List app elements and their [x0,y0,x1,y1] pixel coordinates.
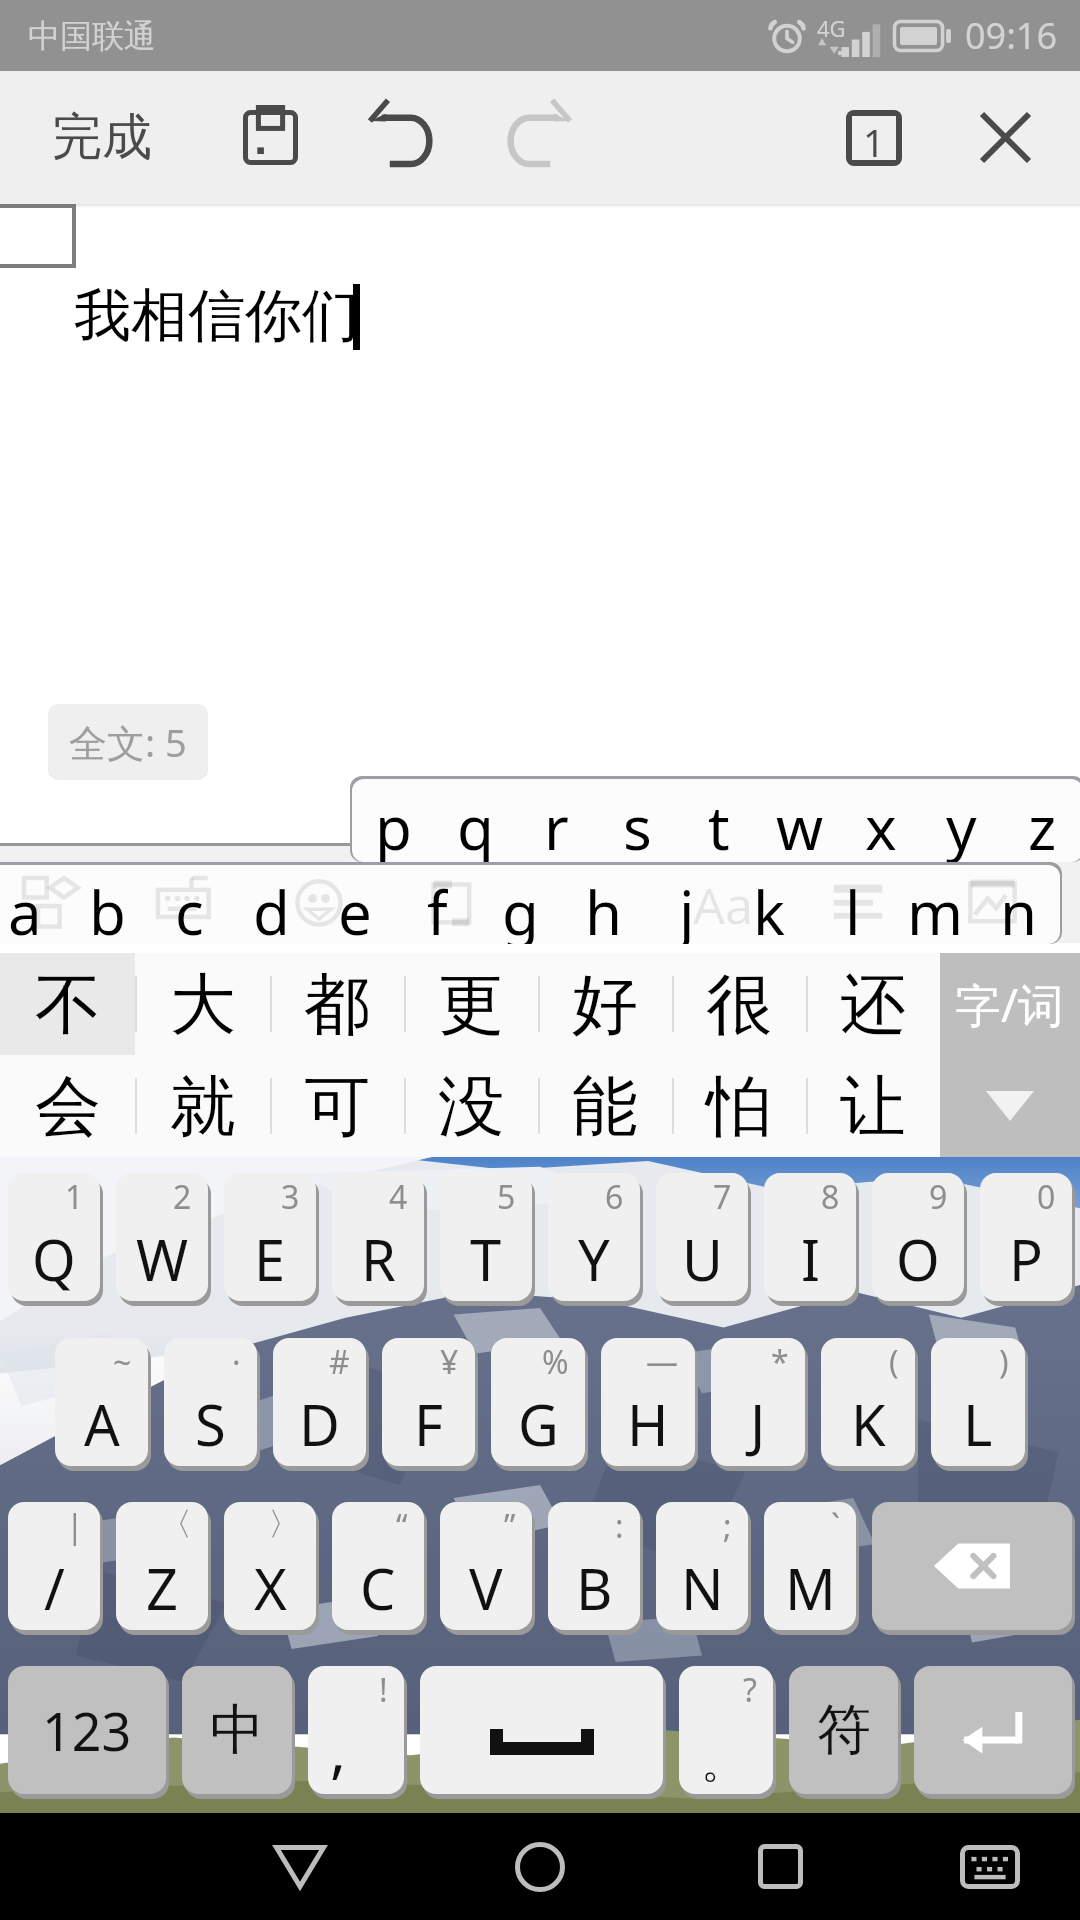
button[interactable]: # [273,1338,366,1466]
button[interactable]: 〉 [224,1502,316,1630]
button[interactable]: 8 [764,1173,856,1301]
button[interactable]: 不 [0,953,135,1055]
button[interactable]: 好 [538,953,672,1055]
button[interactable]: ( [821,1338,915,1466]
button[interactable]: 7 [656,1173,748,1301]
button[interactable]: 全文: 5 [48,704,208,780]
button[interactable]: “ [332,1502,424,1630]
staticText: ; [723,1504,732,1548]
button[interactable]: ~ [55,1338,148,1466]
button[interactable]: · [164,1338,257,1466]
button[interactable]: Aa [0,865,1060,944]
button[interactable]: 能 [538,1055,672,1157]
button[interactable]: 还 [806,953,940,1055]
button[interactable]: p [352,779,1080,862]
button[interactable]: 会 [0,1055,135,1157]
staticText: · [232,1340,241,1384]
button[interactable]: Hide keyboard [935,1813,1045,1920]
staticText: B [576,1550,613,1626]
button[interactable]: 怕 [672,1055,806,1157]
staticText: H [627,1386,669,1462]
staticText: W [136,1221,189,1297]
button[interactable]: 可 [270,1055,404,1157]
staticText: 字/词 [955,973,1065,1036]
staticText: Aa [713,878,773,946]
button[interactable]: 让 [806,1055,940,1157]
staticText: I [801,1221,820,1297]
button[interactable]: % [491,1338,585,1466]
staticText: F [414,1386,444,1462]
staticText: h [585,871,623,944]
button[interactable]: 就 [135,1055,270,1157]
button[interactable]: 更 [404,953,538,1055]
staticText: Y [578,1221,610,1297]
staticText: A [84,1386,120,1462]
staticText: : [615,1504,624,1548]
staticText: q [457,786,494,862]
staticText: 符 [817,1696,871,1764]
button[interactable]: Save [220,71,320,204]
staticText: 3 [281,1175,300,1219]
button[interactable]: Space [420,1666,663,1794]
button[interactable]: 大 [135,953,270,1055]
button[interactable]: 完成 [6,82,198,193]
button[interactable]: ) [931,1338,1025,1466]
staticText: % [542,1340,569,1384]
button[interactable]: ” [440,1502,532,1630]
button[interactable]: Home [485,1813,595,1920]
button[interactable]: 9 [872,1173,964,1301]
button[interactable]: | [8,1502,100,1630]
button[interactable]: ! [308,1666,404,1794]
staticText: 完成 [52,106,152,169]
staticText: 更 [438,963,504,1046]
button[interactable]: Redo [488,71,588,204]
button[interactable]: : [548,1502,640,1630]
button[interactable]: * [711,1338,805,1466]
button[interactable]: 4 [332,1173,424,1301]
button[interactable]: 都 [270,953,404,1055]
staticText: O [896,1221,940,1297]
button[interactable]: ` [764,1502,856,1630]
staticText: , [330,1708,347,1790]
button[interactable]: ; [656,1502,748,1630]
button[interactable]: 没 [404,1055,538,1157]
button[interactable]: Switch character / word [940,953,1080,1157]
button[interactable]: Page count [824,71,924,204]
staticText: 都 [304,963,370,1046]
button[interactable]: Back [245,1813,355,1920]
button[interactable]: 5 [440,1173,532,1301]
button[interactable]: Backspace [872,1502,1072,1630]
staticText: 中 [210,1696,264,1764]
button[interactable]: ? [679,1666,773,1794]
staticText: N [681,1550,724,1626]
staticText: ” [504,1504,516,1548]
staticText: a [8,871,42,944]
button[interactable]: 〈 [116,1502,208,1630]
button[interactable]: 6 [548,1173,640,1301]
staticText: 1 [65,1175,84,1219]
button[interactable]: — [601,1338,695,1466]
button[interactable]: 很 [672,953,806,1055]
button[interactable]: Undo [352,71,452,204]
staticText: r [544,786,569,862]
button[interactable]: 符 [789,1666,898,1794]
staticText: M [785,1550,836,1626]
staticText: ` [831,1504,840,1548]
button[interactable]: 3 [224,1173,316,1301]
staticText: 我相信你们 [74,280,359,352]
staticText: 不 [35,963,101,1046]
button[interactable]: Enter [914,1666,1072,1794]
button[interactable]: Recents [725,1813,835,1920]
button[interactable]: 中 [182,1666,292,1794]
staticText: 。 [701,1735,745,1790]
button[interactable]: Close [955,71,1055,204]
button[interactable]: 1 [8,1173,100,1301]
button[interactable]: 123 [8,1666,166,1794]
staticText: 全文: 5 [69,716,187,768]
button[interactable]: ¥ [382,1338,475,1466]
staticText: ) [999,1340,1009,1384]
button[interactable]: 2 [116,1173,208,1301]
staticText: P [1009,1221,1043,1297]
button[interactable]: 0 [980,1173,1072,1301]
staticText: S [195,1386,226,1462]
